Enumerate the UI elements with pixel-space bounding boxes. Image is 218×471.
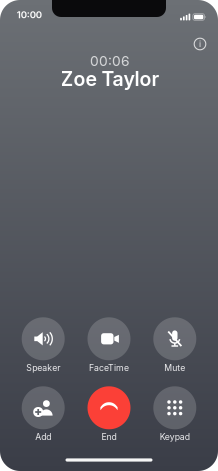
button[interactable]: Mute <box>142 317 208 373</box>
staticText: Keypad <box>160 432 190 442</box>
staticText: i <box>199 39 201 49</box>
button[interactable]: FaceTime <box>76 317 142 373</box>
staticText: End <box>101 432 116 442</box>
button[interactable]: End <box>76 386 142 442</box>
staticText: Zoe Taylor <box>60 67 159 91</box>
button[interactable]: Keypad <box>142 386 208 442</box>
staticText: Add <box>35 432 51 442</box>
staticText: FaceTime <box>89 363 129 373</box>
staticText: Mute <box>164 363 185 373</box>
button[interactable]: Speaker <box>10 317 76 373</box>
button[interactable]: Add <box>10 386 76 442</box>
staticText: 10:00 <box>17 9 42 21</box>
staticText: 00:06 <box>90 53 130 69</box>
staticText: Speaker <box>26 363 60 373</box>
button[interactable]: Call details <box>189 33 211 55</box>
